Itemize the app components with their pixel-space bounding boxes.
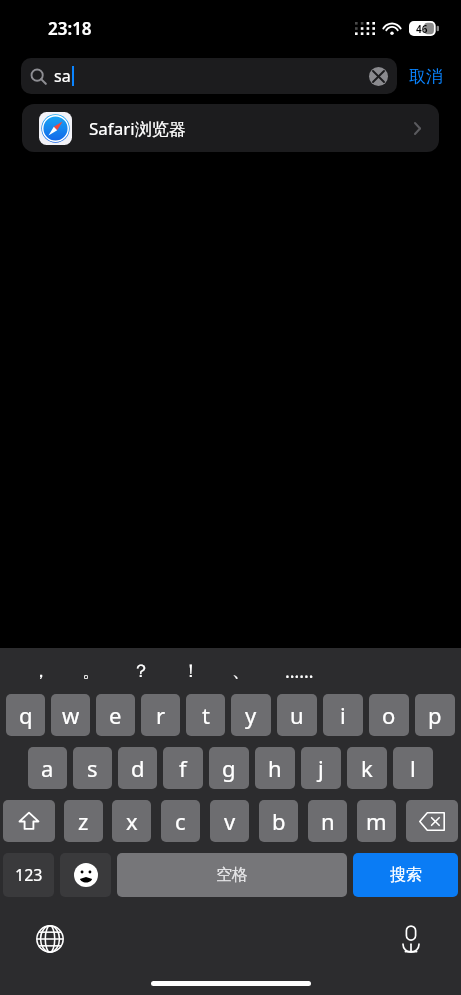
button[interactable]: u <box>277 694 317 736</box>
button[interactable]: ， <box>16 648 66 694</box>
button[interactable]: w <box>51 694 90 736</box>
button[interactable]: f <box>163 747 203 789</box>
staticText: r <box>156 700 166 730</box>
button[interactable]: ？ <box>116 648 166 694</box>
staticText: c <box>175 806 186 836</box>
button[interactable]: 。 <box>66 648 116 694</box>
button[interactable]: ！ <box>166 648 216 694</box>
staticText: o <box>382 700 396 730</box>
staticText: s <box>87 753 98 783</box>
button[interactable]: Emoji <box>60 853 111 897</box>
staticText: ， <box>32 660 50 683</box>
button[interactable]: t <box>186 694 225 736</box>
staticText: q <box>19 700 33 730</box>
staticText: u <box>290 700 304 730</box>
button[interactable]: y <box>231 694 271 736</box>
button[interactable]: m <box>357 800 396 842</box>
button[interactable]: Safari浏览器 <box>22 104 439 152</box>
staticText: p <box>428 700 442 730</box>
button[interactable]: x <box>112 800 151 842</box>
staticText: sa <box>54 65 71 87</box>
button[interactable]: q <box>6 694 45 736</box>
staticText: d <box>131 753 145 783</box>
staticText: w <box>62 700 80 730</box>
button[interactable]: k <box>347 747 387 789</box>
staticText: a <box>41 753 54 783</box>
staticText: ！ <box>182 660 200 683</box>
button[interactable]: s <box>73 747 112 789</box>
staticText: x <box>126 806 138 836</box>
button[interactable]: l <box>393 747 433 789</box>
staticText: 46 <box>416 22 428 36</box>
staticText: 、 <box>232 660 250 683</box>
button[interactable]: Change keyboard language <box>28 917 72 961</box>
button[interactable]: 空格 <box>117 853 347 897</box>
button[interactable]: v <box>210 800 249 842</box>
button[interactable]: c <box>161 800 200 842</box>
button[interactable]: a <box>28 747 67 789</box>
staticText: Safari浏览器 <box>89 117 186 140</box>
staticText: …… <box>285 659 314 684</box>
staticText: e <box>109 700 122 730</box>
button[interactable]: z <box>64 800 103 842</box>
button[interactable]: p <box>415 694 455 736</box>
staticText: h <box>268 753 282 783</box>
staticText: b <box>272 806 286 836</box>
button[interactable]: b <box>259 800 298 842</box>
button[interactable]: sa <box>21 58 397 94</box>
staticText: j <box>318 753 324 783</box>
button[interactable]: …… <box>266 648 332 694</box>
staticText: m <box>366 806 387 836</box>
button[interactable]: d <box>118 747 157 789</box>
staticText: v <box>224 806 236 836</box>
button[interactable]: Shift <box>3 800 55 842</box>
button[interactable]: 取消 <box>397 60 447 93</box>
staticText: f <box>179 753 187 783</box>
button[interactable]: g <box>209 747 249 789</box>
button[interactable]: j <box>301 747 341 789</box>
button[interactable]: n <box>308 800 347 842</box>
staticText: y <box>245 700 257 730</box>
staticText: 搜索 <box>390 865 422 885</box>
button[interactable]: 搜索 <box>353 853 458 897</box>
staticText: z <box>78 806 89 836</box>
staticText: g <box>222 753 236 783</box>
staticText: 空格 <box>216 865 248 885</box>
button[interactable]: h <box>255 747 295 789</box>
button[interactable]: Dictation <box>389 917 433 961</box>
staticText: n <box>321 806 335 836</box>
staticText: i <box>340 700 346 730</box>
button[interactable]: Clear text <box>369 67 388 86</box>
button[interactable]: i <box>323 694 363 736</box>
staticText: l <box>410 753 416 783</box>
button[interactable]: o <box>369 694 409 736</box>
staticText: 取消 <box>409 66 443 87</box>
staticText: 23:18 <box>48 17 92 40</box>
button[interactable]: 123 <box>3 853 54 897</box>
button[interactable]: r <box>141 694 180 736</box>
staticText: k <box>361 753 373 783</box>
staticText: 。 <box>82 660 100 683</box>
button[interactable]: 、 <box>216 648 266 694</box>
staticText: ？ <box>132 660 150 683</box>
staticText: 123 <box>15 864 43 886</box>
button[interactable]: Backspace <box>406 800 458 842</box>
button[interactable]: e <box>96 694 135 736</box>
staticText: t <box>202 700 210 730</box>
